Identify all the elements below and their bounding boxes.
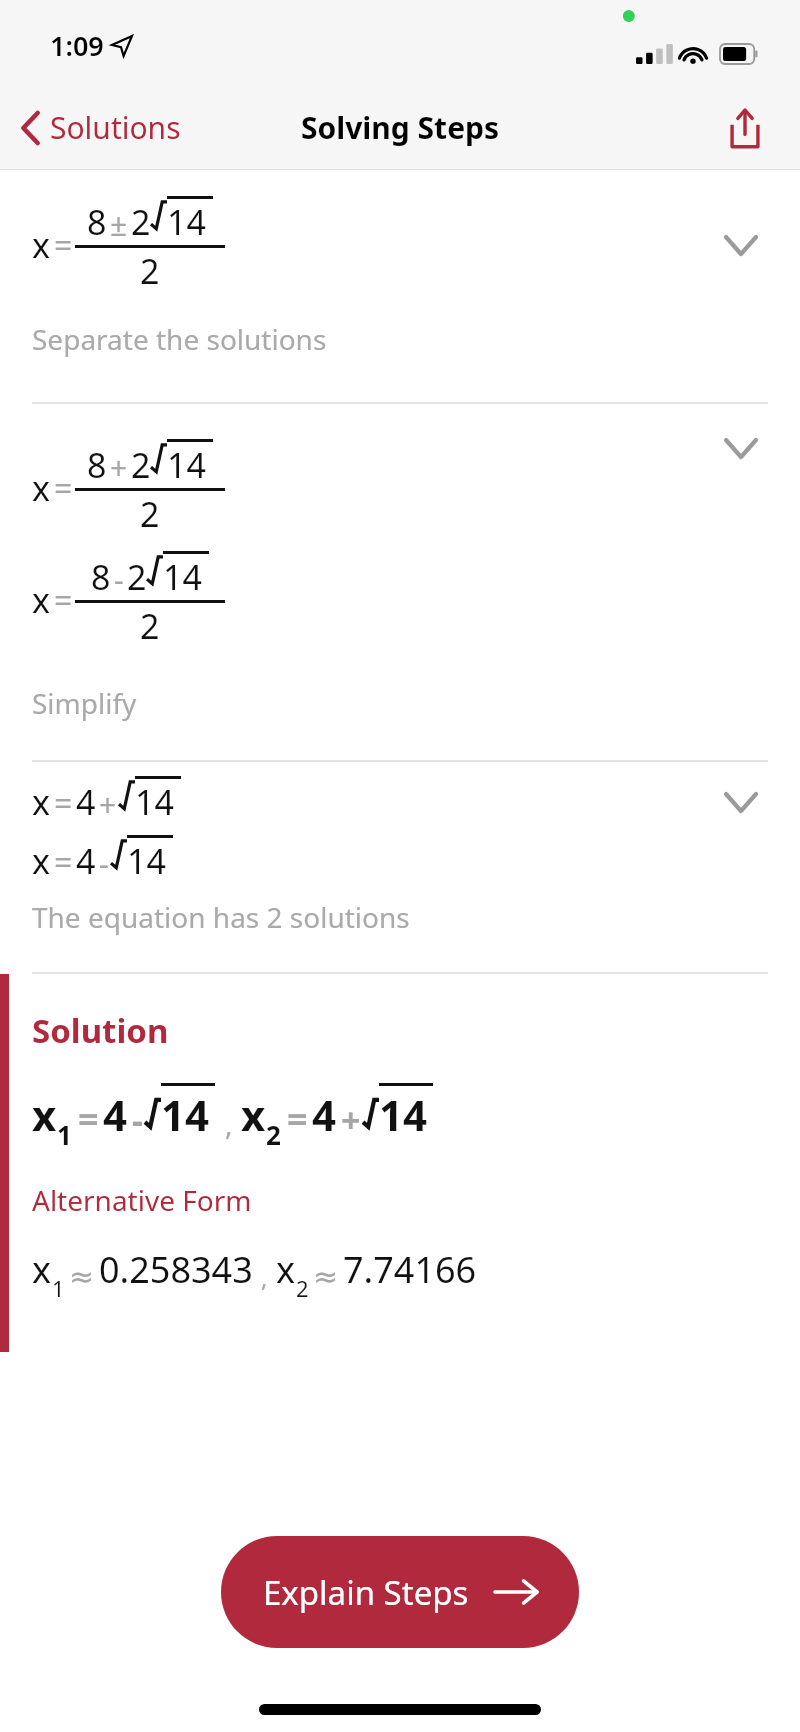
staticText: 8: [87, 199, 107, 245]
staticText: -: [114, 559, 124, 600]
button[interactable]: Explain Steps: [221, 1536, 579, 1648]
button[interactable]: x: [0, 404, 800, 684]
staticText: -: [132, 1097, 143, 1143]
staticText: Separate the solutions: [32, 320, 327, 358]
staticText: 14: [161, 1086, 210, 1143]
staticText: 4: [103, 1086, 128, 1143]
staticText: Simplify: [32, 684, 137, 722]
staticText: The equation has 2 solutions: [32, 898, 410, 936]
button[interactable]: Solutions: [0, 99, 193, 156]
staticText: 14: [167, 442, 206, 488]
button[interactable]: Share: [718, 98, 772, 158]
staticText: Solving Steps: [301, 107, 500, 148]
staticText: 1:09: [50, 27, 104, 64]
staticText: ,: [261, 1261, 268, 1294]
staticText: x: [32, 577, 50, 623]
staticText: x: [32, 838, 50, 884]
staticText: =: [54, 578, 73, 622]
staticText: Solutions: [50, 107, 181, 148]
staticText: 2: [140, 248, 160, 294]
staticText: =: [54, 466, 73, 510]
staticText: 14: [379, 1086, 428, 1143]
staticText: 2: [140, 491, 160, 537]
staticText: 14: [127, 838, 166, 884]
staticText: +: [99, 784, 117, 825]
staticText: 4: [76, 779, 96, 825]
staticText: 14: [135, 779, 174, 825]
staticText: 4: [312, 1086, 337, 1143]
staticText: +: [341, 1097, 361, 1143]
button[interactable]: Expand step: [712, 780, 770, 825]
staticText: 7.74166: [343, 1245, 477, 1294]
staticText: 2: [296, 1273, 309, 1303]
button[interactable]: x: [0, 762, 800, 898]
staticText: =: [54, 781, 73, 825]
staticText: x: [32, 779, 50, 825]
staticText: x: [32, 222, 50, 268]
staticText: 14: [163, 554, 202, 600]
staticText: ≈: [69, 1259, 95, 1294]
staticText: 2: [140, 603, 160, 649]
staticText: +: [110, 447, 128, 488]
staticText: 2: [127, 554, 147, 600]
staticText: Explain Steps: [263, 1570, 469, 1615]
staticText: 4: [76, 838, 96, 884]
staticText: =: [54, 223, 73, 267]
staticText: =: [54, 840, 73, 884]
staticText: ,: [225, 1105, 233, 1143]
staticText: 0.258343: [99, 1245, 253, 1294]
staticText: 14: [167, 199, 206, 245]
staticText: 8: [87, 442, 107, 488]
staticText: 8: [91, 554, 111, 600]
staticText: ≈: [313, 1259, 339, 1294]
staticText: x: [32, 465, 50, 511]
staticText: =: [78, 1094, 99, 1143]
button[interactable]: Expand step: [712, 426, 770, 471]
staticText: 1: [57, 1117, 72, 1152]
button[interactable]: x: [0, 170, 800, 320]
button[interactable]: Expand step: [712, 223, 770, 268]
staticText: -: [99, 843, 109, 884]
staticText: x: [241, 1086, 266, 1143]
staticText: 2: [131, 442, 151, 488]
staticText: x: [32, 1086, 57, 1143]
staticText: Solution: [32, 1008, 169, 1053]
staticText: 1: [52, 1273, 65, 1303]
staticText: x: [276, 1245, 296, 1294]
staticText: ±: [110, 204, 128, 245]
staticText: x: [32, 1245, 52, 1294]
staticText: =: [287, 1094, 308, 1143]
staticText: 2: [131, 199, 151, 245]
staticText: Alternative Form: [32, 1181, 252, 1219]
staticText: 2: [266, 1117, 281, 1152]
